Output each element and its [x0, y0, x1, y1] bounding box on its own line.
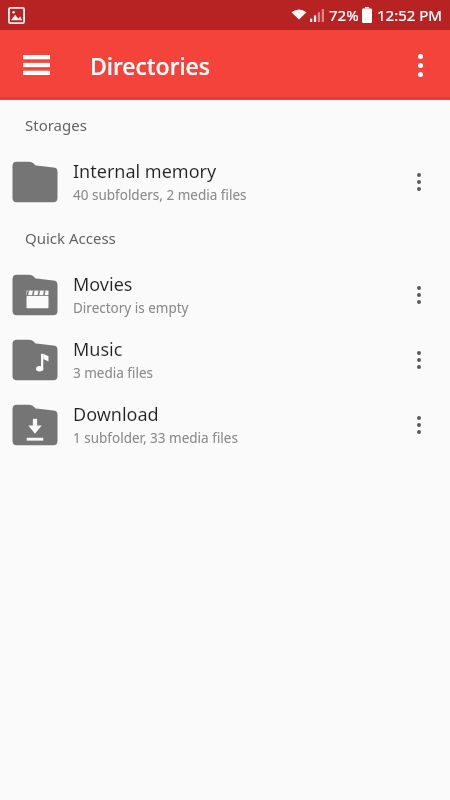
staticText: Download	[73, 402, 159, 427]
staticText: 12:52 PM	[377, 5, 442, 25]
staticText: 1 subfolder, 33 media files	[73, 429, 238, 447]
button[interactable]: Internal memory	[0, 149, 450, 214]
button[interactable]: More options for Download	[396, 392, 442, 457]
staticText: 40 subfolders, 2 media files	[73, 186, 247, 204]
button[interactable]: Movies	[0, 262, 450, 327]
staticText: Directory is empty	[73, 299, 189, 317]
staticText: Quick Access	[25, 228, 116, 248]
staticText: Movies	[73, 272, 133, 297]
staticText: 72%	[329, 5, 359, 25]
staticText: Internal memory	[73, 159, 217, 184]
button[interactable]: Music	[0, 327, 450, 392]
button[interactable]: More options	[394, 39, 446, 91]
staticText: Storages	[25, 115, 87, 135]
button[interactable]: More options for Movies	[396, 262, 442, 327]
staticText: Directories	[90, 50, 210, 81]
staticText: Music	[73, 337, 123, 362]
button[interactable]: Open navigation menu	[8, 37, 64, 93]
button[interactable]: More options for Music	[396, 327, 442, 392]
staticText: 3 media files	[73, 364, 154, 382]
button[interactable]: Download	[0, 392, 450, 457]
button[interactable]: More options for Internal memory	[396, 149, 442, 214]
